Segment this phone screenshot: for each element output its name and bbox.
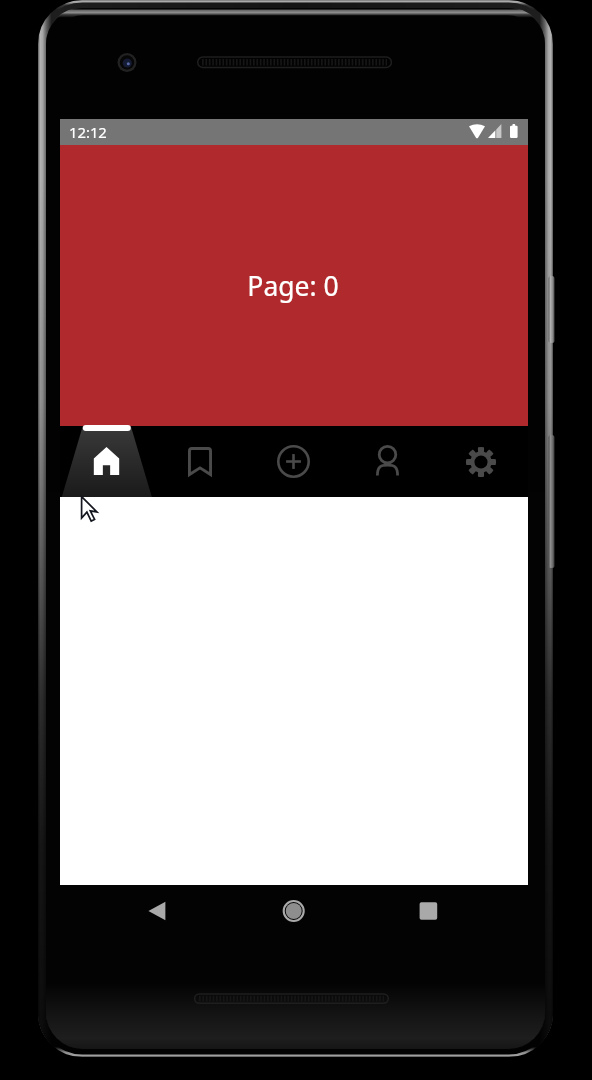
button[interactable]: Settings: [434, 426, 528, 497]
button[interactable]: Profile: [340, 426, 434, 497]
staticText: 12:12: [69, 122, 107, 142]
button[interactable]: Add: [246, 426, 340, 497]
button[interactable]: Home: [60, 426, 153, 497]
staticText: Page: 0: [247, 268, 339, 304]
button[interactable]: Bookmarks: [153, 426, 246, 497]
